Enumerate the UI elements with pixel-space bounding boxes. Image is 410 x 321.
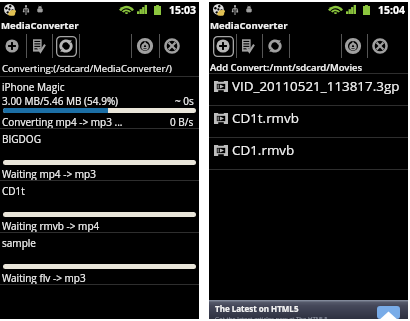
button[interactable]: Settings: [134, 33, 156, 59]
button[interactable]: Close: [161, 33, 183, 59]
staticText: CD1.rmvb: [232, 141, 295, 159]
staticText: BIGDOG: [2, 132, 41, 146]
button[interactable]: Refresh: [264, 33, 286, 59]
button[interactable]: Convert: [28, 33, 50, 59]
staticText: 15:03: [169, 3, 196, 17]
button[interactable]: sample: [0, 233, 199, 285]
button[interactable]: Settings: [342, 33, 364, 59]
staticText: 15:04: [378, 3, 405, 17]
staticText: MediaConverter: [1, 19, 79, 32]
staticText: iPhone Magic: [2, 80, 65, 94]
staticText: The Latest on HTML5: [215, 303, 299, 314]
button[interactable]: Close: [369, 33, 391, 59]
staticText: ~ 0s: [175, 94, 194, 108]
staticText: Converting mp4 -> mp3 ...: [2, 115, 123, 129]
button[interactable]: iPhone Magic: [0, 77, 199, 129]
button[interactable]: Convert: [237, 33, 259, 59]
staticText: Waiting rmvb -> mp4: [2, 219, 100, 233]
staticText: CD1t.rmvb: [232, 109, 299, 127]
staticText: Waiting mp4 -> mp3: [2, 167, 96, 181]
button[interactable]: Refresh: [55, 33, 77, 59]
staticText: sample: [2, 236, 36, 250]
staticText: Converting:(/sdcard/MediaConverter/): [2, 62, 172, 75]
staticText: 0 B/s: [170, 115, 194, 129]
staticText: Add Convert:/mnt/sdcard/Movies: [210, 61, 363, 74]
button[interactable]: CD1t: [0, 181, 199, 233]
staticText: Waiting flv -> mp3: [2, 271, 86, 285]
staticText: 3.00 MB/5.46 MB (54.9%): [2, 94, 119, 108]
button[interactable]: VID_20110521_113817.3gp: [209, 74, 408, 106]
staticText: MediaConverter: [210, 19, 288, 32]
staticText: CD1t: [2, 184, 25, 198]
button[interactable]: BIGDOG: [0, 129, 199, 181]
button[interactable]: CD1t.rmvb: [209, 106, 408, 138]
button[interactable]: Add: [1, 33, 23, 59]
staticText: VID_20110521_113817.3gp: [232, 77, 400, 95]
button[interactable]: Add: [212, 33, 234, 59]
button[interactable]: The Latest on HTML5: [209, 300, 408, 319]
button[interactable]: CD1.rmvb: [209, 138, 408, 170]
staticText: Get the latest articles now at The HTML5: [215, 315, 328, 319]
